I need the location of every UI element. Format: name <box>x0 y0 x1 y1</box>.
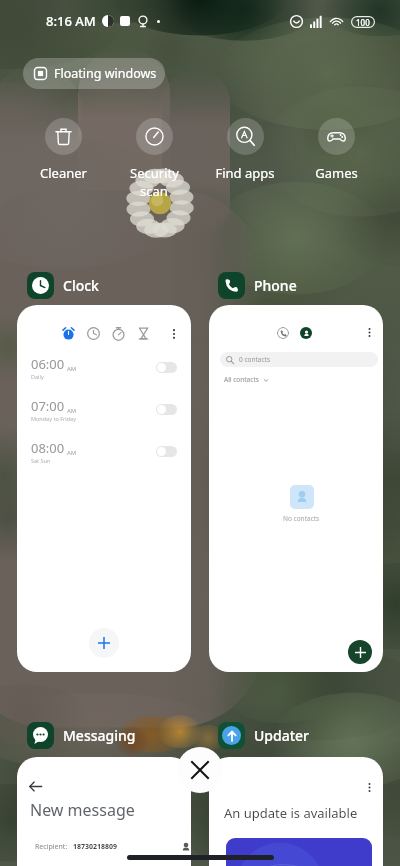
button[interactable]: Messaging <box>27 722 136 749</box>
staticText: All contacts <box>224 375 259 384</box>
button[interactable]: Games <box>294 118 378 182</box>
button[interactable]: 07:00 <box>17 388 191 430</box>
button[interactable]: 08:00 <box>17 430 191 472</box>
staticText: AM <box>67 449 77 457</box>
button[interactable]: Phone <box>218 272 297 299</box>
button[interactable]: Cleaner <box>21 118 105 182</box>
staticText: 18730218809 <box>73 842 118 852</box>
staticText: Sat Sun <box>31 457 51 464</box>
staticText: Messaging <box>63 726 136 745</box>
staticText: No contacts <box>283 514 320 523</box>
staticText: Recipient: <box>35 842 68 852</box>
button[interactable]: Back <box>17 757 191 866</box>
button[interactable]: Add contact <box>348 640 372 664</box>
button[interactable] <box>226 838 372 866</box>
staticText: Monday to Friday <box>31 415 76 422</box>
button[interactable]: 0 contacts <box>220 352 378 367</box>
staticText: 08:00 <box>31 439 65 457</box>
button[interactable]: Find apps <box>203 118 287 182</box>
button[interactable]: An update is available <box>209 757 383 866</box>
staticText: Find apps <box>215 164 275 182</box>
button[interactable]: 06:00 <box>17 305 191 672</box>
staticText: 100 <box>356 17 370 28</box>
button[interactable]: 06:00 <box>17 346 191 388</box>
staticText: Phone <box>254 276 297 295</box>
staticText: 07:00 <box>31 397 65 415</box>
staticText: New message <box>30 799 135 821</box>
staticText: 06:00 <box>31 355 65 373</box>
button[interactable]: Contacts <box>300 327 312 339</box>
button[interactable]: Floating windows <box>23 58 165 89</box>
button[interactable]: Close <box>177 747 223 793</box>
staticText: 8:16 AM <box>46 12 96 30</box>
button[interactable]: Recents <box>209 305 383 672</box>
button[interactable]: Updater <box>218 722 310 749</box>
button[interactable]: Back <box>26 777 44 795</box>
staticText: Clock <box>63 276 99 295</box>
button[interactable]: Recents <box>277 327 289 339</box>
staticText: An update is available <box>224 804 358 822</box>
staticText: Updater <box>254 726 310 745</box>
staticText: Security <box>130 164 179 182</box>
staticText: Games <box>315 164 358 182</box>
staticText: Daily <box>31 373 44 380</box>
button[interactable]: Clock <box>27 272 99 299</box>
staticText: Cleaner <box>40 164 87 182</box>
staticText: AM <box>67 365 77 373</box>
staticText: Floating windows <box>54 65 157 82</box>
button[interactable]: Add alarm <box>89 628 119 658</box>
button[interactable]: Security <box>112 118 196 200</box>
staticText: AM <box>67 407 77 415</box>
button[interactable]: All contacts <box>224 375 269 384</box>
staticText: 0 contacts <box>239 355 271 364</box>
staticText: scan <box>140 182 168 200</box>
